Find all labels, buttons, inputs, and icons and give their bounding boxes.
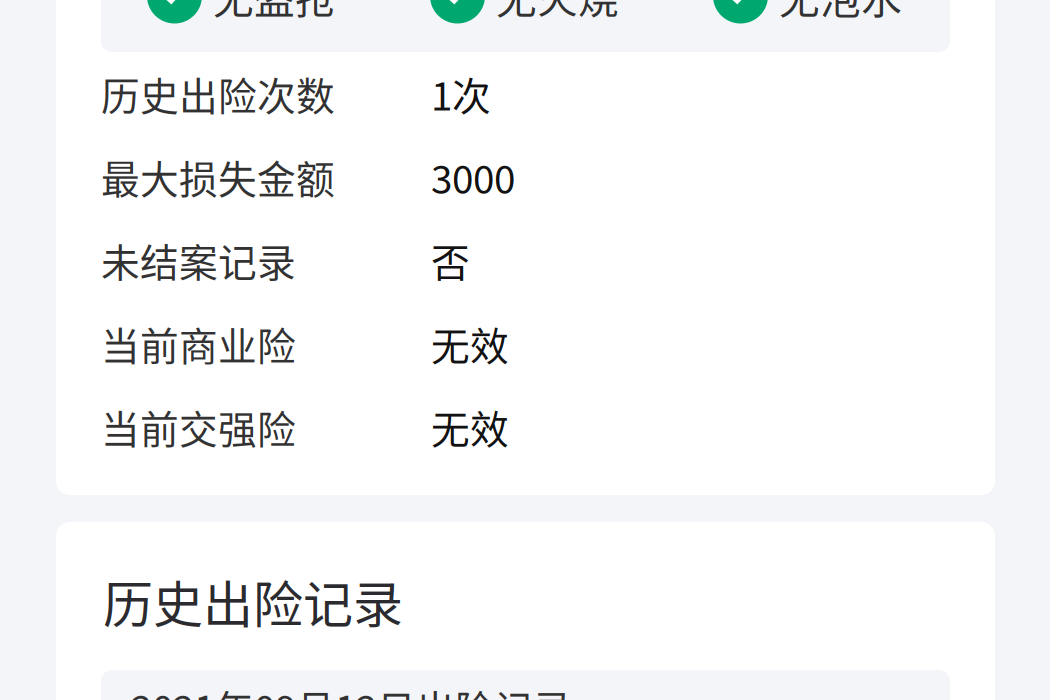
- button[interactable]: 2021年09月12日出险记录: [101, 670, 950, 700]
- staticText: 无效: [431, 399, 509, 455]
- staticText: 1次: [431, 66, 491, 122]
- staticText: 当前交强险: [101, 399, 296, 455]
- staticText: 无火烧: [496, 0, 619, 25]
- staticText: 无效: [431, 316, 509, 372]
- staticText: 否: [431, 232, 470, 288]
- staticText: 3000: [431, 149, 515, 205]
- staticText: 未结案记录: [101, 232, 296, 288]
- staticText: 无泡水: [779, 0, 902, 25]
- staticText: 最大损失金额: [101, 149, 335, 205]
- staticText: 历史出险记录: [103, 565, 403, 637]
- staticText: 历史出险次数: [101, 66, 335, 122]
- staticText: 2021年09月12日出险记录: [131, 679, 572, 700]
- staticText: 无盗抢: [213, 0, 336, 25]
- staticText: 当前商业险: [101, 316, 296, 372]
